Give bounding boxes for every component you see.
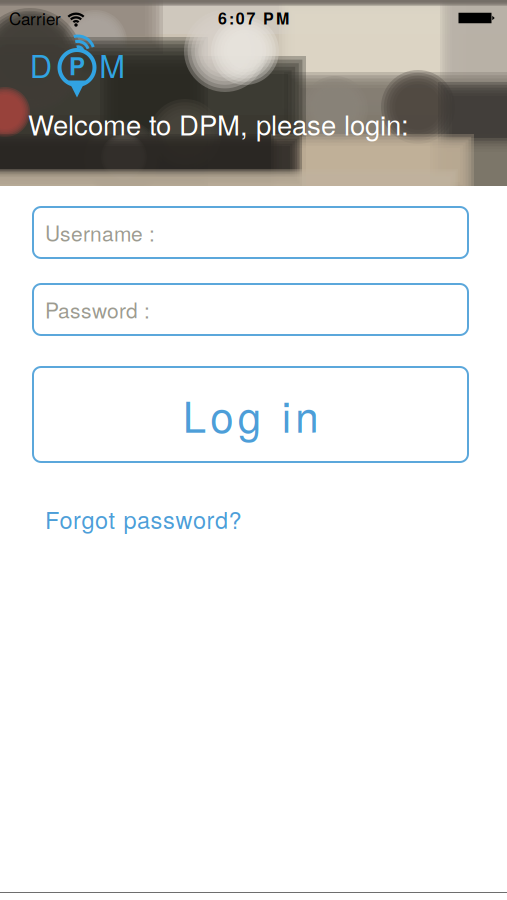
staticText: M — [99, 42, 125, 87]
staticText: Log in — [183, 384, 318, 444]
textField[interactable]: Username : — [45, 217, 468, 248]
button[interactable]: Forgot password? — [45, 502, 241, 536]
button[interactable]: Log in — [33, 367, 468, 462]
staticText: 6:07 PM — [218, 6, 289, 29]
staticText: Welcome to DPM, please login: — [28, 104, 409, 143]
staticText: Username : — [45, 217, 155, 248]
staticText: D — [30, 42, 52, 87]
textField[interactable]: Password : — [45, 294, 468, 325]
staticText: P — [69, 48, 85, 83]
staticText: Password : — [45, 294, 150, 325]
staticText: Forgot password? — [45, 502, 241, 536]
staticText: Carrier — [9, 6, 61, 30]
